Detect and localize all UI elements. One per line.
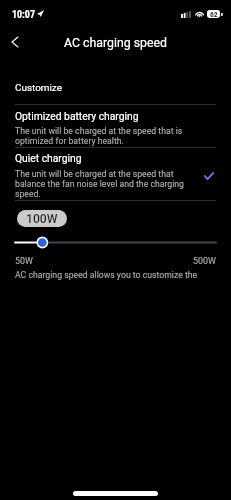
staticText: Quiet charging	[15, 152, 82, 164]
button[interactable]: Optimized battery charging	[0, 104, 231, 147]
button[interactable]: Quiet charging	[0, 147, 231, 200]
staticText: 100W	[26, 212, 58, 226]
staticText: 62	[210, 10, 218, 18]
staticText: Customize	[15, 82, 62, 94]
staticText: The unit will be charged at the speed th…	[15, 126, 183, 146]
staticText: Optimized battery charging	[15, 110, 139, 122]
staticText: The unit will be charged at the speed th…	[15, 169, 184, 199]
staticText: AC charging speed allows you to customiz…	[15, 270, 198, 280]
button[interactable]: 100W	[17, 210, 67, 227]
staticText: 10:07	[12, 9, 35, 21]
staticText: AC charging speed	[64, 36, 167, 50]
button[interactable]: Back	[3, 30, 27, 54]
staticText: 50W	[15, 256, 33, 266]
button[interactable]: Charging speed slider	[15, 236, 216, 249]
staticText: 500W	[193, 256, 216, 266]
